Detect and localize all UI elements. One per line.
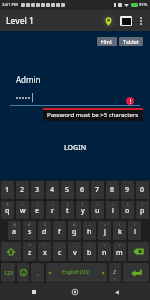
button[interactable]: Back: [109, 284, 125, 300]
button[interactable]: 4: [46, 181, 59, 199]
staticText: ;: [89, 243, 90, 248]
staticText: v: [73, 248, 77, 258]
button[interactable]: Hint: [97, 37, 117, 46]
button[interactable]: !: [98, 242, 111, 261]
button[interactable]: [: [61, 201, 74, 219]
button[interactable]: ]: [76, 201, 89, 219]
button[interactable]: Recents: [26, 284, 42, 300]
staticText: \: [22, 202, 24, 207]
button[interactable]: #: [23, 221, 36, 240]
staticText: ]: [82, 202, 84, 207]
staticText: d: [42, 227, 47, 237]
button[interactable]: Shift: [1, 242, 21, 261]
staticText: Hint: [101, 38, 113, 45]
button[interactable]: LOGIN: [52, 139, 99, 157]
button[interactable]: +: [98, 221, 111, 240]
staticText: Level 1: [6, 15, 34, 27]
staticText: 91%: [139, 2, 148, 8]
button[interactable]: Location: [100, 13, 116, 29]
staticText: (: [119, 222, 121, 227]
staticText: Tablet: [123, 38, 139, 45]
staticText: !: [104, 243, 105, 248]
button[interactable]: Home: [67, 284, 83, 300]
staticText: u: [95, 206, 100, 216]
button[interactable]: 1: [1, 181, 14, 199]
staticText: b: [87, 248, 92, 258]
staticText: Admin: [16, 74, 41, 85]
button[interactable]: ,: [31, 263, 44, 282]
button[interactable]: Space: [46, 263, 107, 282]
button[interactable]: _: [53, 221, 66, 240]
button[interactable]: }: [136, 201, 149, 219]
button[interactable]: 8: [106, 181, 119, 199]
staticText: l: [134, 227, 136, 237]
staticText: r: [51, 206, 54, 216]
staticText: a: [12, 227, 17, 237]
button[interactable]: Backspace: [128, 242, 149, 261]
staticText: {: [127, 202, 129, 207]
staticText: o: [125, 206, 130, 216]
button[interactable]: ): [128, 221, 141, 240]
button[interactable]: @: [8, 221, 21, 240]
button[interactable]: {: [121, 201, 134, 219]
button[interactable]: :: [68, 242, 81, 261]
staticText: 5: [65, 185, 70, 195]
button[interactable]: More options: [135, 15, 147, 27]
staticText: ♪: [113, 269, 117, 275]
button[interactable]: <: [91, 201, 104, 219]
button[interactable]: 123: [1, 263, 15, 282]
button[interactable]: 6: [76, 181, 89, 199]
button[interactable]: %: [1, 201, 14, 219]
button[interactable]: Emoji: [17, 263, 29, 282]
button[interactable]: 9: [121, 181, 134, 199]
staticText: ?: [119, 243, 121, 248]
staticText: >: [112, 202, 114, 207]
button[interactable]: 0: [136, 181, 149, 199]
staticText: p: [140, 206, 145, 216]
staticText: 2: [20, 185, 25, 195]
staticText: ,: [37, 268, 39, 277]
staticText: w: [20, 206, 26, 216]
button[interactable]: 3: [31, 181, 44, 199]
staticText: }: [142, 202, 144, 207]
button[interactable]: ♪: [109, 263, 121, 282]
button[interactable]: 2: [16, 181, 29, 199]
button[interactable]: =: [46, 201, 59, 219]
staticText: $: [44, 222, 46, 227]
button[interactable]: >: [106, 201, 119, 219]
button[interactable]: \: [16, 201, 29, 219]
staticText: e: [35, 206, 40, 216]
button[interactable]: ': [53, 242, 66, 261]
staticText: n: [102, 248, 107, 258]
staticText: j: [104, 227, 106, 237]
button[interactable]: (: [113, 221, 126, 240]
staticText: ): [134, 222, 136, 227]
staticText: q: [5, 206, 10, 216]
button[interactable]: ;: [83, 242, 96, 261]
button[interactable]: *: [23, 242, 36, 261]
staticText: 7: [95, 185, 100, 195]
button[interactable]: Tablet mode: [118, 13, 134, 29]
staticText: 0: [140, 185, 145, 195]
staticText: LOGIN: [64, 143, 87, 153]
staticText: s: [28, 227, 32, 237]
button[interactable]: 5: [61, 181, 74, 199]
staticText: f: [58, 227, 61, 237]
staticText: 3: [35, 185, 40, 195]
staticText: 6: [80, 185, 85, 195]
button[interactable]: ": [38, 242, 51, 261]
button[interactable]: &: [68, 221, 81, 240]
button[interactable]: Tablet: [119, 37, 143, 46]
staticText: &: [73, 222, 76, 227]
staticText: Password must be >5 characters: [47, 111, 139, 119]
staticText: =: [52, 202, 54, 207]
button[interactable]: -: [83, 221, 96, 240]
button[interactable]: ?: [113, 242, 126, 261]
staticText: t: [66, 206, 69, 216]
button[interactable]: 7: [91, 181, 104, 199]
button[interactable]: |: [31, 201, 44, 219]
staticText: c: [58, 248, 62, 258]
button[interactable]: $: [38, 221, 51, 240]
button[interactable]: Enter: [123, 263, 149, 282]
staticText: .: [114, 274, 116, 281]
